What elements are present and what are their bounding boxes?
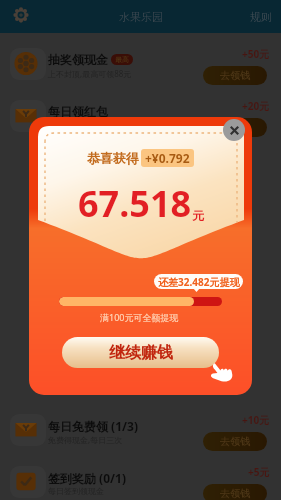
staticText: 满100元可全额提现: [100, 311, 179, 323]
button[interactable]: 每日领红包: [0, 96, 281, 144]
staticText: 去领钱: [220, 435, 250, 448]
button[interactable]: Close: [223, 119, 245, 141]
staticText: +50元: [242, 47, 270, 61]
staticText: 最高: [115, 55, 129, 64]
staticText: +20元: [242, 99, 270, 113]
staticText: 元: [192, 208, 204, 223]
button[interactable]: 去领钱: [203, 66, 267, 85]
button[interactable]: 签到奖励 (0/1): [0, 462, 281, 500]
staticText: 去领钱: [220, 121, 250, 134]
staticText: 去领钱: [220, 69, 250, 82]
button[interactable]: 去领钱: [203, 118, 267, 137]
staticText: +5元: [248, 465, 270, 479]
button[interactable]: 继续赚钱: [62, 337, 219, 368]
staticText: +¥0.792: [145, 150, 190, 166]
staticText: 每日领红包: [48, 104, 108, 119]
staticText: 免费得现金,每日三次: [48, 434, 123, 445]
button[interactable]: 去领钱: [203, 432, 267, 451]
staticText: +10元: [242, 413, 270, 427]
button[interactable]: 去领钱: [203, 484, 267, 500]
staticText: 每日可领3次: [48, 120, 93, 131]
staticText: 每日免费领 (1/3): [48, 418, 138, 434]
staticText: 水果乐园: [119, 10, 163, 24]
button[interactable]: 每日免费领 (1/3): [0, 410, 281, 458]
button[interactable]: 规则: [250, 10, 272, 24]
staticText: 每日签到领现金: [48, 486, 104, 496]
staticText: 继续赚钱: [109, 343, 173, 363]
staticText: 签到奖励 (0/1): [48, 470, 126, 486]
staticText: 还差32.482元提现: [158, 275, 240, 289]
staticText: 67.518: [78, 179, 192, 228]
staticText: 上不封顶,最高可领88元: [48, 68, 132, 79]
button[interactable]: 抽奖领现金: [0, 44, 281, 92]
staticText: 去领钱: [220, 487, 250, 500]
button[interactable]: Settings: [13, 7, 29, 23]
staticText: 恭喜获得: [87, 150, 139, 166]
staticText: 抽奖领现金: [48, 52, 108, 67]
